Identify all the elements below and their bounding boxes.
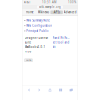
staticText: set tool and: [52, 41, 69, 44]
button[interactable]: Wiki Summary Note: [24, 18, 76, 23]
staticText: Wiki Configuration: [26, 24, 52, 27]
staticText: Wiki Summary Note: [26, 19, 50, 22]
staticText: Designer License: [24, 36, 48, 40]
staticText: Advanced: [64, 10, 76, 14]
staticText: Home: [26, 10, 34, 14]
staticText: APIs: [54, 10, 60, 14]
button[interactable]: wiki.example.org: [37, 5, 63, 8]
button[interactable]: Forward: [34, 86, 45, 93]
staticText: Fixed Fit Folio: [52, 36, 69, 40]
button[interactable]: Fixed Fit Folio: [52, 36, 69, 40]
button[interactable]: Advanced: [64, 10, 76, 14]
button[interactable]: Principal Public: [24, 28, 76, 34]
staticText: Select file: [25, 59, 31, 61]
button[interactable]: Tabs: [66, 86, 76, 93]
button[interactable]: set tool and: [52, 41, 69, 44]
button[interactable]: Bookmarks: [55, 86, 66, 93]
staticText: Suite: [24, 41, 31, 44]
button[interactable]: Share: [45, 86, 55, 93]
button[interactable]: Wikinews: [37, 10, 50, 14]
staticText: 10:31 AM: [42, 0, 56, 4]
staticText: Wikinews: [38, 10, 49, 14]
button[interactable]: kit: [52, 45, 55, 49]
staticText: Principal Public: [26, 29, 48, 33]
staticText: AT&T: [24, 0, 30, 4]
staticText: FY06: [24, 50, 31, 53]
button[interactable]: Home: [24, 10, 36, 14]
button[interactable]: Select file: [24, 59, 32, 62]
button[interactable]: APIs: [50, 10, 63, 14]
staticText: MacBook v2.0.1: [24, 45, 45, 49]
button[interactable]: Back: [23, 86, 34, 93]
staticText: wiki.example.org: [39, 5, 61, 9]
staticText: kit: [52, 45, 55, 49]
button[interactable]: Wiki Configuration: [24, 23, 76, 28]
staticText: 100%: [68, 0, 76, 4]
